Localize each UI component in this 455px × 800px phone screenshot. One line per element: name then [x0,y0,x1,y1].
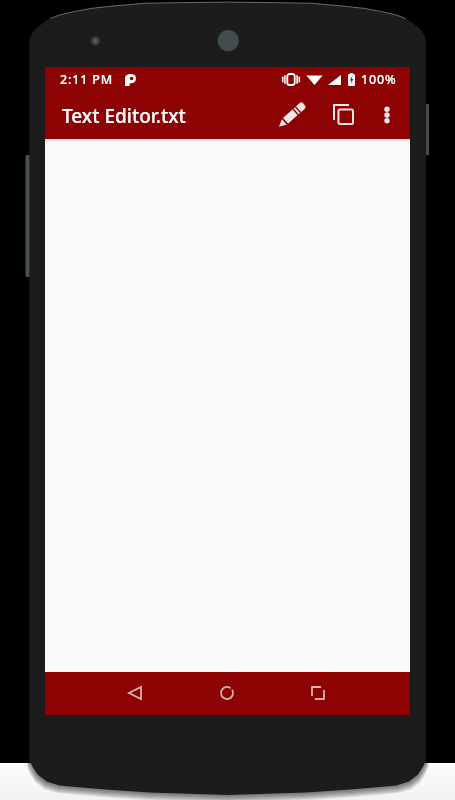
button[interactable]: Copy [321,92,366,137]
staticText: 2:11 PM [60,71,114,88]
button[interactable]: Recents [296,671,340,714]
button[interactable]: More options [366,94,408,136]
button[interactable]: Edit [269,93,314,138]
button[interactable]: Back [113,671,157,714]
staticText: 100% [361,71,397,88]
button[interactable]: Home [205,671,249,714]
staticText: Text Editor.txt [62,103,186,129]
